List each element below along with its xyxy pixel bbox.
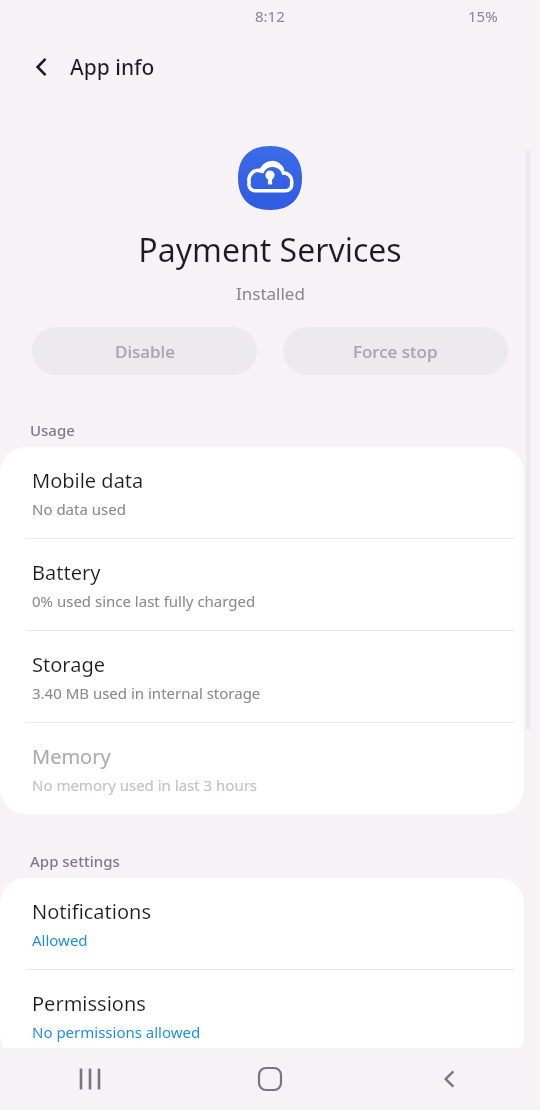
staticText: Usage — [30, 420, 75, 440]
button[interactable]: Disable — [32, 327, 257, 375]
button[interactable]: Back — [20, 45, 64, 89]
staticText: 15% — [468, 6, 498, 26]
staticText: App info — [70, 53, 155, 82]
button[interactable]: Storage — [0, 631, 524, 722]
staticText: 8:12 — [255, 6, 285, 26]
staticText: Force stop — [353, 340, 438, 363]
button[interactable]: Force stop — [283, 327, 508, 375]
staticText: 0% used since last fully charged — [32, 591, 256, 611]
button[interactable]: Back — [360, 1048, 540, 1110]
staticText: App settings — [30, 851, 120, 871]
button[interactable]: Permissions — [0, 970, 524, 1061]
staticText: Battery — [32, 559, 101, 586]
staticText: No memory used in last 3 hours — [32, 775, 258, 795]
button[interactable]: Battery — [0, 539, 524, 630]
button[interactable]: Home — [180, 1048, 360, 1110]
staticText: Memory — [32, 743, 111, 770]
staticText: Disable — [115, 340, 175, 363]
staticText: Permissions — [32, 990, 146, 1017]
staticText: Payment Services — [138, 228, 402, 272]
staticText: No data used — [32, 499, 126, 519]
button[interactable]: Recent apps — [0, 1048, 180, 1110]
staticText: Allowed — [32, 930, 88, 950]
button[interactable]: Notifications — [0, 878, 524, 969]
button[interactable]: Memory — [0, 723, 524, 814]
staticText: Storage — [32, 651, 105, 678]
staticText: Notifications — [32, 898, 151, 925]
staticText: Installed — [236, 282, 305, 305]
button[interactable]: Mobile data — [0, 447, 524, 538]
staticText: No permissions allowed — [32, 1022, 201, 1042]
staticText: Mobile data — [32, 467, 144, 494]
staticText: 3.40 MB used in internal storage — [32, 683, 261, 703]
